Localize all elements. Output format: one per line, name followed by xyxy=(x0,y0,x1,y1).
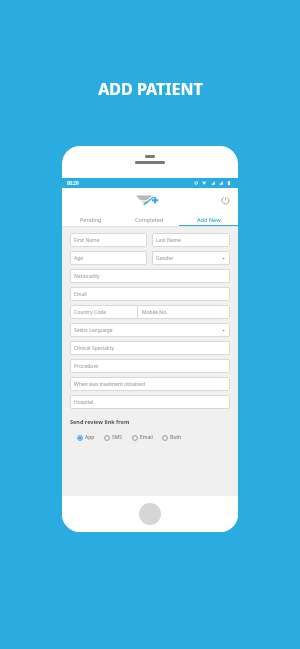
staticText: Email xyxy=(140,434,153,441)
staticText: Procedure xyxy=(74,363,99,370)
staticText: Gender xyxy=(156,255,174,262)
staticText: Age xyxy=(74,255,84,262)
staticText: Last Name xyxy=(156,237,182,244)
button[interactable]: When was treatment obtained xyxy=(70,377,230,391)
staticText: Pending xyxy=(80,216,102,223)
button[interactable]: Logo xyxy=(133,191,167,209)
button[interactable]: Clinical Speciality xyxy=(70,341,230,355)
button[interactable]: Mobile No. xyxy=(138,305,230,319)
staticText: Send review link from xyxy=(70,418,130,425)
staticText: Hospital xyxy=(74,399,94,406)
button[interactable]: Procedure xyxy=(70,359,230,373)
staticText: Both xyxy=(170,434,182,441)
staticText: Email xyxy=(74,291,87,298)
staticText: 00:29 xyxy=(67,180,79,186)
staticText: App xyxy=(85,434,95,441)
button[interactable]: Add New xyxy=(179,212,238,226)
button[interactable]: Home xyxy=(139,503,161,525)
button[interactable]: Email xyxy=(131,434,154,441)
button[interactable]: Select Language xyxy=(70,323,230,337)
button[interactable]: Gender xyxy=(152,251,230,265)
button[interactable]: Completed xyxy=(120,212,179,226)
staticText: When was treatment obtained xyxy=(74,381,146,388)
staticText: Nationality xyxy=(74,273,100,280)
button[interactable]: Power xyxy=(219,194,231,206)
staticText: SMS xyxy=(112,434,123,441)
button[interactable]: Pending xyxy=(62,212,120,226)
button[interactable]: Email xyxy=(70,287,230,301)
staticText: Completed xyxy=(135,216,164,223)
staticText: Select Language xyxy=(74,327,113,334)
staticText: Clinical Speciality xyxy=(74,345,114,352)
staticText: Country Code xyxy=(74,309,107,316)
button[interactable]: SMS xyxy=(103,434,124,441)
button[interactable]: Age xyxy=(70,251,147,265)
button[interactable]: Both xyxy=(161,434,183,441)
staticText: First Name xyxy=(74,237,100,244)
button[interactable]: Nationality xyxy=(70,269,230,283)
staticText: ADD PATIENT xyxy=(98,78,203,100)
staticText: Mobile No. xyxy=(142,309,168,316)
staticText: Add New xyxy=(197,216,221,223)
button[interactable]: App xyxy=(76,434,96,441)
button[interactable]: Hospital xyxy=(70,395,230,409)
button[interactable]: Last Name xyxy=(152,233,230,247)
button[interactable]: Country Code xyxy=(70,305,137,319)
button[interactable]: First Name xyxy=(70,233,147,247)
